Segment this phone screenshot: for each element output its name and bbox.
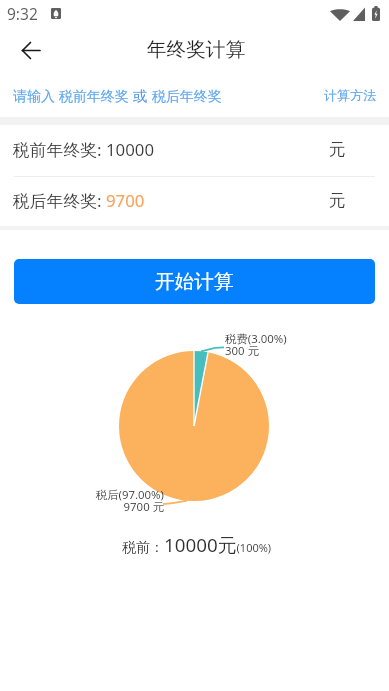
button[interactable]: 税前年终奖:	[0, 125, 389, 176]
staticText: 年终奖计算	[147, 37, 245, 62]
staticText: 税后年终奖:	[13, 189, 106, 212]
button[interactable]: 税后年终奖:	[0, 177, 389, 226]
staticText: 9:32	[7, 3, 38, 24]
staticText: 计算方法	[324, 87, 376, 103]
staticText: 10000	[106, 138, 155, 161]
button[interactable]: 计算方法	[324, 87, 376, 103]
button[interactable]: 开始计算	[14, 259, 375, 304]
staticText: 税后年终奖	[148, 86, 222, 105]
button[interactable]: Back	[11, 30, 51, 70]
staticText: 请输入 税前年终奖	[13, 86, 133, 105]
staticText: 税费(3.00%) 300 元	[225, 331, 287, 358]
staticText: 或	[133, 87, 148, 105]
staticText: 9700	[106, 189, 145, 212]
staticText: 税后(97.00%) 9700 元	[84, 487, 164, 514]
staticText: 税前年终奖:	[13, 138, 106, 161]
staticText: 开始计算	[155, 269, 234, 294]
staticText: 元	[329, 190, 346, 211]
staticText: 税前：10000元(100%)	[122, 532, 272, 558]
staticText: 元	[329, 139, 346, 160]
